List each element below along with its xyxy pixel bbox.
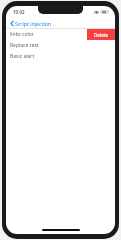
button[interactable]: Delete bbox=[87, 29, 115, 40]
button[interactable]: Back bbox=[9, 19, 53, 28]
other: Back bbox=[10, 20, 14, 27]
button[interactable]: links color bbox=[6, 29, 115, 40]
staticText: links color bbox=[10, 31, 34, 38]
button[interactable]: Basic alert bbox=[6, 51, 115, 62]
button[interactable]: Replace text bbox=[6, 40, 115, 51]
staticText: Replace text bbox=[10, 42, 39, 49]
staticText: 10:02 bbox=[13, 9, 25, 15]
staticText: Basic alert bbox=[10, 53, 35, 60]
staticText: Script injection bbox=[15, 20, 52, 27]
staticText: Delete bbox=[94, 32, 108, 38]
